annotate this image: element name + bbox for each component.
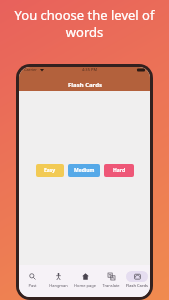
staticText: Flash Cards [68,81,102,89]
staticText: Past [28,283,37,288]
staticText: 4:35 PM [82,67,98,72]
staticText: You choose the level of words [10,6,159,41]
staticText: Hangman [49,283,68,288]
button[interactable]: Easy [36,164,64,177]
staticText: Carrier [24,67,38,72]
staticText: Easy [44,167,56,174]
button[interactable]: Hard [104,164,134,177]
staticText: Medium [74,167,95,174]
button[interactable]: Translate [98,271,124,288]
staticText: Flash Cards [126,283,148,288]
button[interactable]: Past [19,271,45,288]
staticText: Home page [74,283,96,288]
button[interactable]: Medium [68,164,100,177]
button[interactable]: Home page [72,271,98,288]
button[interactable]: Flash Cards [124,271,150,288]
button[interactable]: Hangman [45,271,71,288]
staticText: Hard [113,167,126,174]
staticText: Translate [102,283,120,288]
